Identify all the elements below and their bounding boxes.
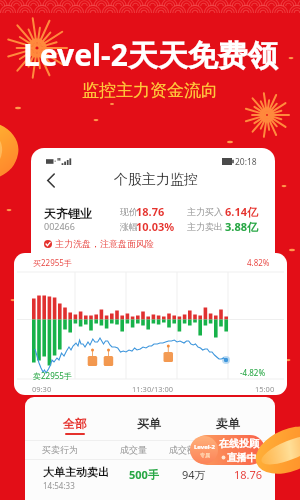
staticText: 11:30/13:00 xyxy=(132,384,174,394)
staticText: 主力卖出 xyxy=(187,221,223,232)
staticText: 15:00 xyxy=(255,384,275,394)
staticText: 成交额 xyxy=(169,444,196,455)
staticText: 直播中 xyxy=(227,451,257,464)
staticText: 18.76 xyxy=(234,467,263,482)
button[interactable]: 卖单 xyxy=(208,413,248,433)
staticText: 卖22955手 xyxy=(33,370,72,381)
staticText: 监控主力资金流向 xyxy=(82,80,218,101)
staticText: 002466 xyxy=(44,220,75,232)
staticText: -4.82% xyxy=(240,367,266,378)
staticText: 20:18 xyxy=(235,156,257,168)
staticText: 18.76 xyxy=(136,204,165,219)
button[interactable]: 全部 xyxy=(55,413,95,433)
staticText: 个股主力监控 xyxy=(114,171,198,189)
staticText: Level-2 xyxy=(194,443,215,451)
staticText: 买卖行为 xyxy=(42,444,78,455)
staticText: 买单 xyxy=(137,416,161,431)
staticText: 94万 xyxy=(182,467,206,482)
staticText: 在线投顾 xyxy=(219,437,259,450)
staticText: 全部 xyxy=(63,416,87,431)
staticText: 09:30 xyxy=(32,384,52,394)
staticText: 大单主动卖出 xyxy=(43,465,109,479)
staticText: 4.82% xyxy=(247,257,270,268)
button[interactable]: 在线投顾 xyxy=(192,435,265,465)
staticText: 14:54:33 xyxy=(43,480,75,491)
staticText: 主力洗盘，注意盘面风险 xyxy=(55,238,154,249)
staticText: 现价 xyxy=(120,206,138,217)
staticText: 专属 xyxy=(200,452,210,458)
staticText: 涨幅 xyxy=(120,221,138,232)
staticText: 10.03% xyxy=(136,219,175,234)
staticText: 主力买入 xyxy=(187,206,223,217)
button[interactable]: 大单主动卖出 xyxy=(25,460,275,497)
button[interactable]: Back xyxy=(37,168,65,192)
staticText: 天齐锂业 xyxy=(44,206,92,221)
button[interactable]: 买单 xyxy=(129,413,169,433)
staticText: 成交量 xyxy=(120,444,147,455)
staticText: 卖单 xyxy=(216,416,240,431)
staticText: 成交价 xyxy=(235,444,262,455)
staticText: Level-2天天免费领 xyxy=(23,34,278,75)
staticText: 6.14亿 xyxy=(225,204,258,219)
staticText: 3.88亿 xyxy=(225,219,258,234)
staticText: 买22955手 xyxy=(33,257,72,268)
staticText: 500手 xyxy=(129,467,159,482)
